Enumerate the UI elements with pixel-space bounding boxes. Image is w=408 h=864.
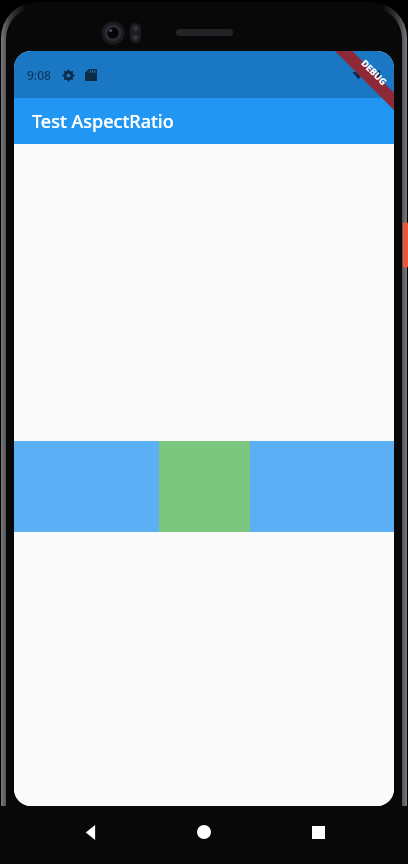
button[interactable]: Test AspectRatio [14, 98, 394, 144]
staticText: Test AspectRatio [32, 109, 174, 134]
staticText: 9:08 [27, 67, 51, 83]
button[interactable]: Recent apps [295, 809, 341, 855]
button[interactable]: Home [181, 809, 227, 855]
staticText: DEBUG [359, 57, 390, 87]
button[interactable]: Back [68, 809, 114, 855]
